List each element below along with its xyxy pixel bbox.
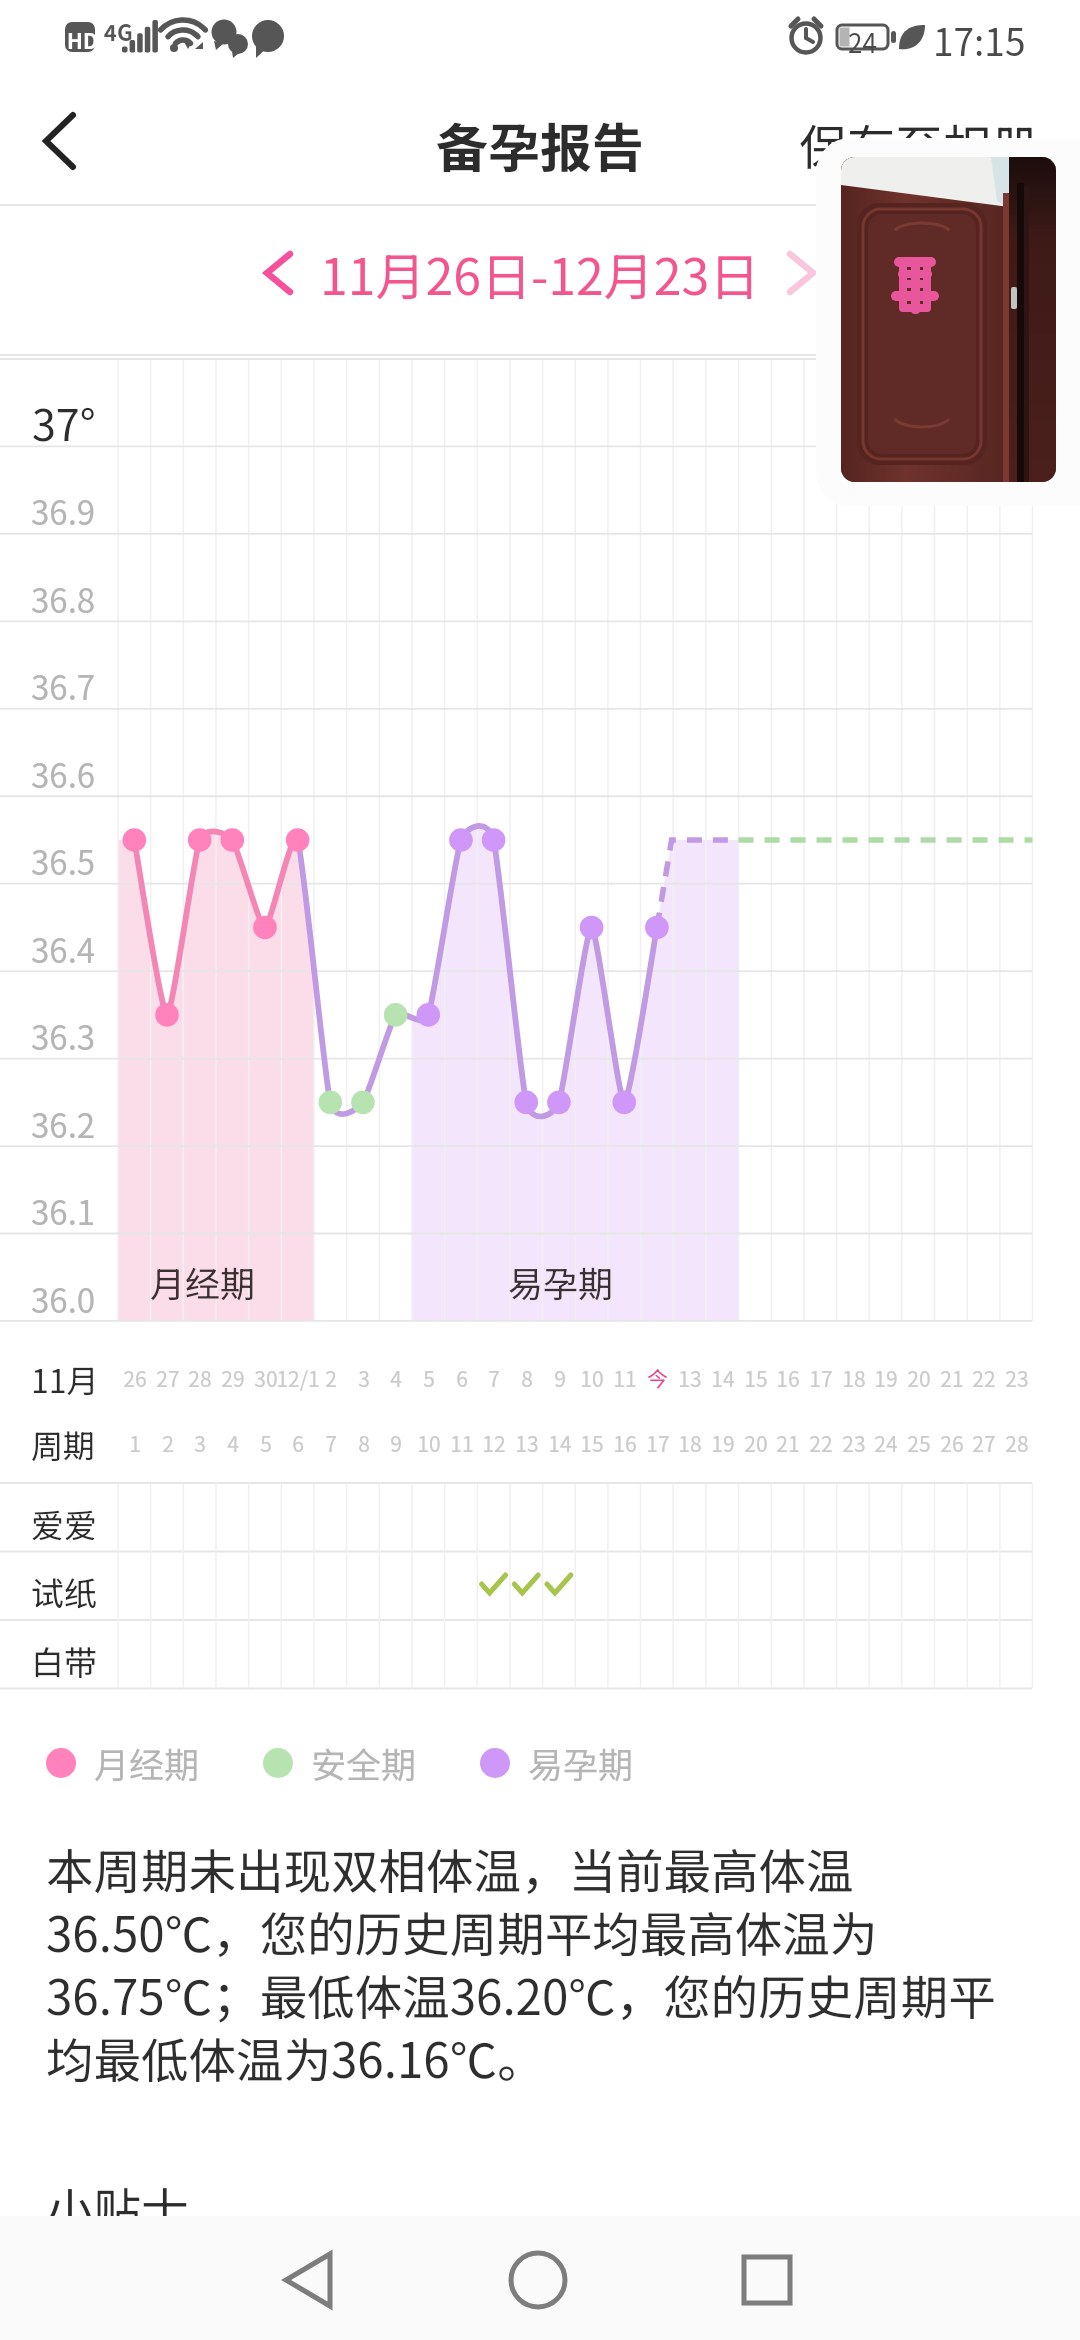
staticText: 24 bbox=[848, 23, 877, 61]
button[interactable]: Back bbox=[248, 2216, 372, 2340]
button[interactable]: Home bbox=[476, 2216, 600, 2340]
button[interactable]: Back bbox=[0, 82, 128, 206]
staticText: 白带 bbox=[31, 1637, 97, 1685]
button[interactable]: Screenshot preview bbox=[816, 138, 1080, 506]
staticText: 安全期 bbox=[311, 1737, 417, 1788]
staticText: 5 bbox=[260, 1428, 272, 1458]
staticText: 17 bbox=[809, 1363, 833, 1393]
staticText: 7 bbox=[325, 1428, 337, 1458]
staticText: 23 bbox=[1005, 1363, 1029, 1393]
staticText: 2 bbox=[162, 1428, 174, 1458]
staticText: 25 bbox=[907, 1428, 931, 1458]
staticText: 今 bbox=[647, 1363, 668, 1393]
staticText: 6 bbox=[292, 1428, 304, 1458]
staticText: 4 bbox=[390, 1363, 402, 1393]
staticText: 6 bbox=[456, 1363, 468, 1393]
button[interactable]: 易孕期 bbox=[480, 1737, 634, 1788]
staticText: 9 bbox=[554, 1363, 566, 1393]
staticText: 试纸 bbox=[31, 1568, 97, 1616]
staticText: 11月26日-12月23日 bbox=[320, 237, 760, 309]
staticText: 20 bbox=[744, 1428, 768, 1458]
staticText: 37° bbox=[32, 391, 96, 453]
staticText: 26 bbox=[123, 1363, 147, 1393]
staticText: 月经期 bbox=[150, 1256, 256, 1307]
staticText: 28 bbox=[1005, 1428, 1029, 1458]
button[interactable]: Recents bbox=[704, 2216, 828, 2340]
staticText: 3 bbox=[194, 1428, 206, 1458]
staticText: 15 bbox=[580, 1428, 604, 1458]
staticText: HD bbox=[67, 25, 98, 55]
staticText: 8 bbox=[521, 1363, 533, 1393]
staticText: 11月 bbox=[31, 1356, 99, 1402]
staticText: 7 bbox=[488, 1363, 500, 1393]
staticText: 17 bbox=[646, 1428, 670, 1458]
staticText: 21 bbox=[940, 1363, 964, 1393]
staticText: 27 bbox=[972, 1428, 996, 1458]
staticText: 2 bbox=[325, 1363, 337, 1393]
staticText: 5 bbox=[423, 1363, 435, 1393]
staticText: 30 bbox=[254, 1363, 278, 1393]
staticText: 36.9 bbox=[31, 487, 96, 535]
staticText: 4 bbox=[227, 1428, 239, 1458]
staticText: 月经期 bbox=[94, 1737, 200, 1788]
staticText: 易孕期 bbox=[528, 1737, 634, 1788]
staticText: 18 bbox=[842, 1363, 866, 1393]
staticText: 16 bbox=[613, 1428, 637, 1458]
staticText: 13 bbox=[678, 1363, 702, 1393]
staticText: 26 bbox=[940, 1428, 964, 1458]
button[interactable]: Previous period bbox=[244, 235, 320, 311]
staticText: 14 bbox=[548, 1428, 572, 1458]
staticText: 1 bbox=[129, 1428, 141, 1458]
staticText: 16 bbox=[776, 1363, 800, 1393]
staticText: 36.1 bbox=[31, 1187, 96, 1235]
staticText: 36.8 bbox=[31, 575, 96, 623]
staticText: 27 bbox=[156, 1363, 180, 1393]
staticText: 12/1 bbox=[276, 1363, 320, 1393]
button[interactable]: 安全期 bbox=[263, 1737, 417, 1788]
staticText: 36.5 bbox=[31, 837, 96, 885]
staticText: 13 bbox=[515, 1428, 539, 1458]
staticText: 15 bbox=[744, 1363, 768, 1393]
staticText: 22 bbox=[809, 1428, 833, 1458]
staticText: 19 bbox=[874, 1363, 898, 1393]
staticText: 小贴士 bbox=[46, 2173, 189, 2242]
staticText: 36.4 bbox=[31, 925, 96, 973]
staticText: 周期 bbox=[31, 1421, 96, 1467]
staticText: 36.2 bbox=[31, 1100, 96, 1148]
staticText: 10 bbox=[580, 1363, 604, 1393]
staticText: 4G bbox=[104, 15, 133, 47]
staticText: 爱爱 bbox=[31, 1500, 97, 1548]
staticText: 24 bbox=[874, 1428, 898, 1458]
staticText: 36.7 bbox=[31, 662, 96, 710]
staticText: 19 bbox=[711, 1428, 735, 1458]
staticText: 22 bbox=[972, 1363, 996, 1393]
staticText: 备孕报告 bbox=[436, 107, 645, 182]
staticText: 36.3 bbox=[31, 1012, 96, 1060]
staticText: 17:15 bbox=[933, 13, 1026, 67]
staticText: 36.0 bbox=[31, 1275, 96, 1323]
staticText: 易孕期 bbox=[508, 1256, 614, 1307]
staticText: 3 bbox=[358, 1363, 370, 1393]
staticText: 10 bbox=[417, 1428, 441, 1458]
staticText: 11 bbox=[613, 1363, 637, 1393]
staticText: 12 bbox=[482, 1428, 506, 1458]
staticText: 14 bbox=[711, 1363, 735, 1393]
staticText: 28 bbox=[188, 1363, 212, 1393]
button[interactable]: 月经期 bbox=[46, 1737, 200, 1788]
staticText: 18 bbox=[678, 1428, 702, 1458]
staticText: 36.6 bbox=[31, 750, 96, 798]
button[interactable]: 保存至相册 bbox=[799, 109, 1040, 179]
button[interactable]: Next period bbox=[760, 235, 836, 311]
staticText: 本周期未出现双相体温，当前最高体温 36.50℃，您的历史周期平均最高体温为 3… bbox=[46, 1834, 996, 2092]
staticText: 20 bbox=[907, 1363, 931, 1393]
staticText: 29 bbox=[221, 1363, 245, 1393]
staticText: 8 bbox=[358, 1428, 370, 1458]
staticText: 21 bbox=[776, 1428, 800, 1458]
staticText: 9 bbox=[390, 1428, 402, 1458]
staticText: 23 bbox=[842, 1428, 866, 1458]
staticText: 11 bbox=[450, 1428, 474, 1458]
